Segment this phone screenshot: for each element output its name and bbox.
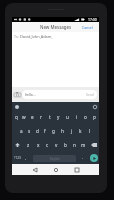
button[interactable]: hello... [22,90,97,99]
staticText: . [82,155,84,161]
staticText: English [50,157,60,161]
button[interactable]: Add attachment [13,90,22,99]
staticText: i [76,114,78,120]
button[interactable]: Send [90,154,98,162]
staticText: q [15,114,18,120]
button[interactable]: u [63,110,72,124]
button[interactable]: Emoji [14,104,19,109]
button[interactable]: Recents [72,165,82,175]
button[interactable]: r [36,110,45,124]
staticText: r [40,114,42,120]
button[interactable]: q [12,110,20,124]
staticText: j [71,128,73,134]
staticText: To: [14,34,19,39]
button[interactable]: i [72,110,81,124]
button[interactable]: j [67,124,76,138]
staticText: g [52,128,55,134]
button[interactable]: x [33,138,43,152]
staticText: e [31,114,34,120]
staticText: hello... [25,92,36,97]
staticText: 17:00 [88,17,97,22]
staticText: l [89,128,91,134]
button[interactable]: g [49,124,58,138]
button[interactable]: . [78,152,87,164]
button[interactable]: z [23,138,33,152]
staticText: p [93,114,96,120]
staticText: f [44,128,46,134]
staticText: t [49,114,51,120]
staticText: , [25,155,27,161]
staticText: m [81,142,86,148]
staticText: z [27,142,30,148]
staticText: b [64,142,67,148]
staticText: u [66,114,69,120]
button[interactable]: k [76,124,85,138]
staticText: v [55,142,58,148]
button[interactable]: Cancel [79,22,99,32]
button[interactable]: To: [12,32,99,41]
staticText: s [28,128,31,134]
button[interactable]: s [25,124,33,138]
button[interactable]: English [33,155,76,162]
button[interactable]: n [70,138,79,152]
button[interactable]: Home [51,165,61,175]
button[interactable]: Backspace [88,138,99,152]
button[interactable]: , [22,152,29,164]
button[interactable]: Shift [12,138,23,152]
staticText: c [46,142,49,148]
button[interactable]: b [61,138,70,152]
button[interactable]: o [81,110,90,124]
button[interactable]: l [85,124,94,138]
button[interactable]: a [17,124,25,138]
staticText: y [57,114,60,120]
button[interactable]: e [28,110,36,124]
button[interactable]: d [33,124,41,138]
button[interactable]: t [45,110,54,124]
staticText: w [22,114,26,120]
staticText: h [61,128,64,134]
staticText: a [20,128,23,134]
staticText: Cancel [82,25,93,30]
button[interactable]: Settings [92,104,97,109]
button[interactable]: ?123 [13,152,22,164]
staticText: o [84,114,87,120]
button[interactable]: m [79,138,88,152]
button[interactable]: f [41,124,49,138]
button[interactable]: h [58,124,67,138]
staticText: New Messages [40,24,72,30]
staticText: x [37,142,40,148]
staticText: d [36,128,39,134]
button[interactable]: p [90,110,99,124]
staticText: Send [86,92,94,97]
button[interactable]: c [43,138,52,152]
staticText: David,John,Adam, [20,34,53,39]
button[interactable]: y [54,110,63,124]
staticText: k [79,128,82,134]
button[interactable]: v [52,138,61,152]
button[interactable]: Back [30,165,40,175]
button[interactable]: w [20,110,28,124]
staticText: ?123 [14,156,21,160]
staticText: n [73,142,76,148]
